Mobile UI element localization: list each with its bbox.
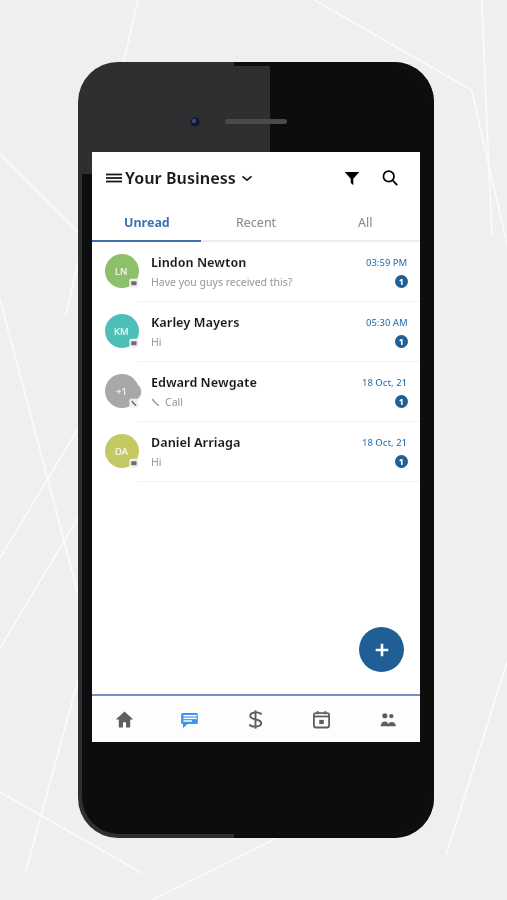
staticText: Hi bbox=[151, 455, 162, 469]
staticText: LN bbox=[115, 265, 128, 278]
button[interactable]: Your Business bbox=[125, 167, 252, 189]
staticText: 1 bbox=[399, 276, 404, 287]
staticText: Call bbox=[165, 395, 183, 409]
staticText: 05:30 AM bbox=[366, 316, 408, 329]
button[interactable]: Filter bbox=[336, 162, 368, 194]
staticText: 1 bbox=[399, 396, 404, 407]
staticText: DA bbox=[115, 445, 128, 458]
staticText: Your Business bbox=[125, 167, 236, 189]
button[interactable]: DA bbox=[92, 422, 420, 481]
button[interactable]: Contacts bbox=[354, 696, 420, 742]
button[interactable]: Recent bbox=[202, 204, 311, 240]
staticText: 1 bbox=[399, 456, 404, 467]
staticText: 03:59 PM bbox=[366, 256, 408, 269]
button[interactable]: All bbox=[311, 204, 420, 240]
button[interactable]: LN bbox=[92, 242, 420, 301]
staticText: KM bbox=[114, 325, 129, 338]
staticText: Recent bbox=[236, 214, 277, 231]
staticText: 1 bbox=[399, 336, 404, 347]
staticText: 18 Oct, 21 bbox=[362, 376, 408, 389]
staticText: Unread bbox=[124, 214, 170, 231]
staticText: Lindon Newton bbox=[151, 254, 247, 271]
staticText: 18 Oct, 21 bbox=[362, 436, 408, 449]
staticText: Karley Mayers bbox=[151, 314, 240, 331]
button[interactable]: KM bbox=[92, 302, 420, 361]
staticText: All bbox=[358, 214, 373, 231]
staticText: +1 bbox=[116, 385, 127, 398]
staticText: Have you guys received this? bbox=[151, 275, 293, 289]
staticText: Daniel Arriaga bbox=[151, 434, 241, 451]
button[interactable]: Menu bbox=[106, 170, 122, 186]
button[interactable]: New message bbox=[359, 627, 404, 672]
staticText: Edward Newgate bbox=[151, 374, 257, 391]
button[interactable]: Home bbox=[92, 696, 157, 742]
button[interactable]: Calendar bbox=[288, 696, 354, 742]
button[interactable]: Search bbox=[374, 162, 406, 194]
button[interactable]: Unread bbox=[92, 204, 202, 240]
staticText: Hi bbox=[151, 335, 162, 349]
button[interactable]: Payments bbox=[222, 696, 288, 742]
button[interactable]: Messages bbox=[157, 696, 222, 742]
button[interactable]: +1 bbox=[92, 362, 420, 421]
